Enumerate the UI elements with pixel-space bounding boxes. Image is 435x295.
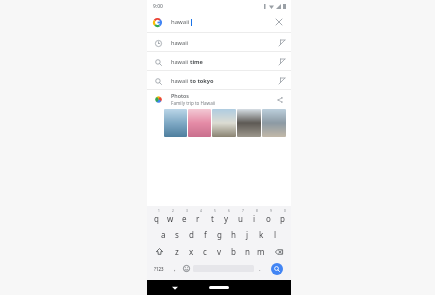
- staticText: k: [259, 229, 264, 240]
- button[interactable]: ,: [169, 260, 180, 277]
- staticText: 1: [158, 209, 160, 213]
- staticText: 2: [172, 209, 174, 213]
- staticText: z: [175, 246, 179, 257]
- staticText: Photos: [171, 92, 189, 99]
- button[interactable]: Search: [265, 260, 289, 277]
- staticText: x: [189, 246, 194, 257]
- staticText: ?123: [154, 266, 164, 272]
- button[interactable]: Share: [274, 94, 285, 105]
- button[interactable]: 8: [247, 209, 261, 226]
- button[interactable]: m: [254, 243, 268, 260]
- staticText: w: [167, 213, 174, 224]
- button[interactable]: Clear search: [273, 16, 285, 28]
- button[interactable]: l: [268, 226, 282, 243]
- button[interactable]: hawaii: [147, 33, 291, 52]
- button[interactable]: x: [184, 243, 198, 260]
- staticText: j: [246, 229, 249, 240]
- staticText: t: [211, 213, 214, 224]
- button[interactable]: Backspace: [268, 243, 289, 260]
- staticText: i: [253, 213, 256, 224]
- staticText: 6: [228, 209, 230, 213]
- staticText: u: [238, 213, 243, 224]
- button[interactable]: Back: [169, 282, 181, 294]
- staticText: 0: [284, 209, 286, 213]
- button[interactable]: 2: [163, 209, 177, 226]
- staticText: v: [217, 246, 222, 257]
- button[interactable]: 3: [177, 209, 191, 226]
- staticText: hawaii: [171, 77, 190, 85]
- button[interactable]: j: [240, 226, 254, 243]
- button[interactable]: k: [254, 226, 268, 243]
- staticText: l: [274, 229, 277, 240]
- button[interactable]: a: [156, 226, 170, 243]
- staticText: n: [245, 246, 250, 257]
- staticText: c: [203, 246, 207, 257]
- staticText: ,: [174, 265, 176, 273]
- button[interactable]: 5: [205, 209, 219, 226]
- button[interactable]: b: [226, 243, 240, 260]
- staticText: hawaii: [171, 39, 189, 47]
- button[interactable]: n: [240, 243, 254, 260]
- staticText: 7: [242, 209, 244, 213]
- staticText: d: [189, 229, 194, 240]
- staticText: m: [257, 246, 265, 257]
- staticText: y: [224, 213, 229, 224]
- staticText: 5: [214, 209, 216, 213]
- button[interactable]: z: [170, 243, 184, 260]
- button[interactable]: 4: [191, 209, 205, 226]
- staticText: h: [231, 229, 236, 240]
- staticText: 4: [200, 209, 202, 213]
- button[interactable]: [262, 109, 286, 137]
- button[interactable]: hawaii: [147, 52, 291, 71]
- button[interactable]: c: [198, 243, 212, 260]
- button[interactable]: h: [226, 226, 240, 243]
- staticText: o: [266, 213, 271, 224]
- button[interactable]: 1: [149, 209, 163, 226]
- staticText: g: [217, 229, 222, 240]
- staticText: 9: [270, 209, 272, 213]
- staticText: b: [231, 246, 236, 257]
- button[interactable]: [188, 109, 211, 137]
- button[interactable]: s: [170, 226, 184, 243]
- staticText: 9:00: [153, 3, 163, 10]
- button[interactable]: 7: [233, 209, 247, 226]
- staticText: f: [204, 229, 207, 240]
- staticText: q: [154, 213, 159, 224]
- button[interactable]: hawaii: [147, 71, 291, 90]
- button[interactable]: f: [198, 226, 212, 243]
- button[interactable]: ?123: [149, 260, 169, 277]
- staticText: hawaii: [171, 58, 190, 66]
- button[interactable]: [212, 109, 236, 137]
- staticText: 8: [256, 209, 258, 213]
- staticText: hawaii: [171, 18, 190, 26]
- button[interactable]: d: [184, 226, 198, 243]
- button[interactable]: Home: [209, 286, 229, 289]
- staticText: s: [175, 229, 179, 240]
- button[interactable]: 6: [219, 209, 233, 226]
- button[interactable]: Photos: [147, 90, 291, 137]
- button[interactable]: .: [254, 260, 265, 277]
- button[interactable]: 9: [261, 209, 275, 226]
- staticText: to tokyo: [190, 77, 214, 85]
- staticText: a: [161, 229, 166, 240]
- staticText: e: [182, 213, 187, 224]
- button[interactable]: [237, 109, 261, 137]
- button[interactable]: v: [212, 243, 226, 260]
- staticText: .: [259, 265, 261, 273]
- button[interactable]: [164, 109, 187, 137]
- staticText: 3: [186, 209, 188, 213]
- button[interactable]: 0: [275, 209, 289, 226]
- staticText: r: [196, 213, 200, 224]
- button[interactable]: g: [212, 226, 226, 243]
- staticText: time: [190, 58, 203, 66]
- button[interactable]: hawaii: [147, 12, 291, 32]
- staticText: p: [280, 213, 285, 224]
- staticText: Family trip to Hawaii: [171, 100, 216, 106]
- button[interactable]: Shift: [149, 243, 170, 260]
- button[interactable]: Emoji: [180, 260, 193, 277]
